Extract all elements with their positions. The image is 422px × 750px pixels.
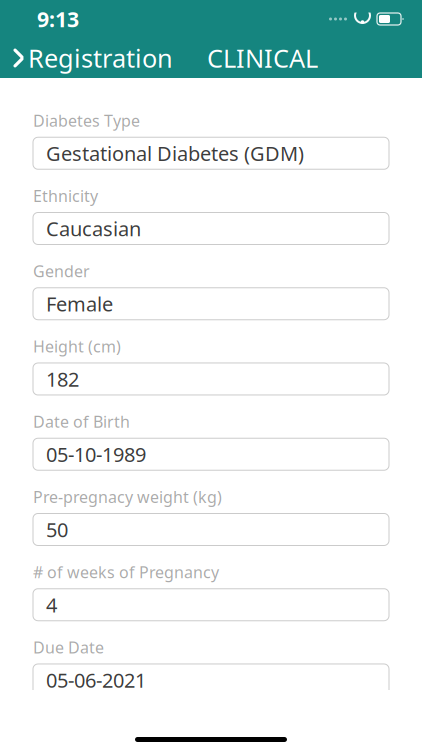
button[interactable]: Ethnicity xyxy=(33,185,389,244)
staticText: 9:13 xyxy=(37,5,79,33)
staticText: Diabetes Type xyxy=(33,110,140,131)
staticText: 05-06-2021 xyxy=(46,667,146,693)
staticText: Caucasian xyxy=(46,215,141,242)
staticText: CLINICAL xyxy=(207,41,318,75)
button[interactable]: Back to Registration xyxy=(0,38,181,78)
staticText: Due Date xyxy=(33,637,104,658)
staticText: Height (cm) xyxy=(33,336,121,357)
staticText: 50 xyxy=(46,516,68,543)
staticText: 4 xyxy=(46,591,57,618)
staticText: Gestational Diabetes (GDM) xyxy=(46,140,304,167)
button[interactable]: # of weeks of Pregnancy xyxy=(33,561,389,621)
staticText: 05-10-1989 xyxy=(46,441,146,468)
button[interactable]: Due Date xyxy=(33,637,389,696)
staticText: Registration xyxy=(28,41,173,75)
button[interactable]: Date of Birth xyxy=(33,411,389,470)
button[interactable]: Gender xyxy=(33,260,389,320)
staticText: 182 xyxy=(46,366,79,392)
staticText: Date of Birth xyxy=(33,411,130,432)
staticText: Ethnicity xyxy=(33,185,98,206)
button[interactable]: Pre-pregnacy weight (kg) xyxy=(33,486,389,545)
button[interactable]: Height (cm) xyxy=(33,336,389,395)
staticText: # of weeks of Pregnancy xyxy=(33,561,219,583)
button[interactable]: Diabetes Type xyxy=(33,110,389,169)
staticText: Pre-pregnacy weight (kg) xyxy=(33,486,222,507)
button[interactable]: Estimated Conception Date xyxy=(33,712,389,750)
staticText: Female xyxy=(46,290,113,317)
staticText: Gender xyxy=(33,260,90,282)
